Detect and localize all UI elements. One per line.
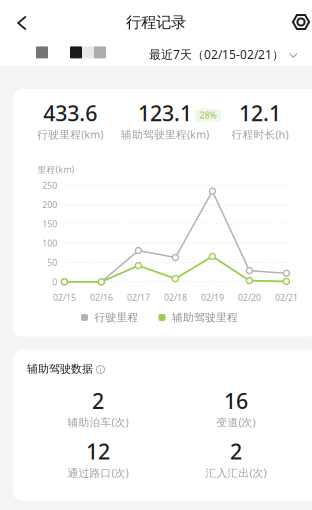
staticText: 辅助驾驶数据 <box>27 362 93 376</box>
staticText: 里程(km) <box>37 163 74 175</box>
staticText: i <box>99 364 101 374</box>
staticText: 02/20 <box>238 291 261 303</box>
staticText: 02/17 <box>127 291 150 303</box>
staticText: 12 <box>86 437 110 466</box>
staticText: 100 <box>42 237 57 249</box>
staticText: 2 <box>92 386 104 415</box>
staticText: 12.1 <box>239 98 281 127</box>
staticText: 02/15 <box>53 291 76 303</box>
staticText: 0 <box>52 276 57 288</box>
staticText: 2 <box>230 437 242 466</box>
staticText: 行驶里程 <box>94 311 138 324</box>
staticText: 02/16 <box>90 291 113 303</box>
staticText: 28% <box>199 109 216 121</box>
staticText: 02/21 <box>275 291 298 303</box>
staticText: 16 <box>224 386 248 415</box>
staticText: 最近7天（02/15-02/21） <box>149 46 284 62</box>
staticText: 行驶里程(km) <box>37 127 103 142</box>
staticText: 辅助驾驶里程 <box>172 311 238 324</box>
staticText: 123.1 <box>138 98 192 127</box>
staticText: 汇入汇出(次) <box>205 465 266 480</box>
staticText: 02/19 <box>201 291 224 303</box>
staticText: 02/18 <box>164 291 187 303</box>
staticText: 433.6 <box>43 98 97 127</box>
staticText: 通过路口(次) <box>67 465 128 480</box>
button[interactable]: Back <box>2 1 42 45</box>
button[interactable]: Settings <box>284 0 312 44</box>
staticText: 行程时长(h) <box>231 127 288 142</box>
staticText: 辅助泊车(次) <box>67 415 128 429</box>
button[interactable]: 最近7天（02/15-02/21） <box>149 46 298 62</box>
staticText: 50 <box>47 257 57 268</box>
staticText: 250 <box>42 179 57 191</box>
staticText: 200 <box>42 199 57 211</box>
staticText: 辅助驾驶里程(km) <box>121 127 209 142</box>
staticText: 变道(次) <box>216 415 255 429</box>
staticText: 行程记录 <box>126 13 186 32</box>
button[interactable]: Vehicle <box>36 46 48 58</box>
staticText: 150 <box>42 218 57 230</box>
